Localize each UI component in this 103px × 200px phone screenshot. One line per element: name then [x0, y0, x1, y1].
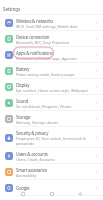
- staticText: Sound: [16, 98, 28, 104]
- staticText: Device connection: [16, 34, 50, 40]
- staticText: Storage: [16, 114, 31, 120]
- button[interactable]: Storage: [0, 111, 103, 127]
- button[interactable]: Security & privacy: [0, 127, 103, 148]
- button[interactable]: Battery: [0, 63, 103, 79]
- staticText: Users, Cloud, Accounts: [16, 157, 55, 162]
- staticText: Settings: [3, 6, 21, 12]
- staticText: Wi-Fi, Dual SIM settings, Mobile data: [16, 24, 78, 29]
- staticText: Smart assistance: [16, 167, 47, 173]
- staticText: Google: [16, 185, 30, 191]
- staticText: Eye comfort, Home screen style, Wallpape…: [16, 88, 89, 93]
- button[interactable]: Apps & notifications: [0, 47, 103, 63]
- staticText: Users & accounts: [16, 151, 48, 157]
- button[interactable]: Google: [0, 180, 103, 196]
- button[interactable]: Smart assistance: [0, 164, 103, 180]
- button[interactable]: Recents: [17, 188, 29, 200]
- button[interactable]: Back: [74, 188, 86, 200]
- staticText: Memory, Storage cleaner: [16, 120, 59, 125]
- button[interactable]: Display: [0, 79, 103, 95]
- staticText: Accessibility: [16, 173, 37, 178]
- staticText: Permissions, Default apps, App twin: [16, 56, 77, 61]
- staticText: Battery: [16, 66, 30, 72]
- button[interactable]: Sound: [0, 95, 103, 111]
- staticText: Power saving mode, Battery usage: [16, 72, 75, 77]
- staticText: Display: [16, 82, 30, 88]
- staticText: Fingerprint ID, Face unlock, Screen lock…: [16, 136, 93, 146]
- staticText: Do not disturb, Ringtone, Vibrate: [16, 104, 72, 109]
- staticText: Security & privacy: [16, 130, 49, 136]
- staticText: Apps & notifications: [16, 50, 53, 56]
- staticText: Bluetooth, NFC, Easy Projection: [16, 40, 69, 45]
- staticText: Wireless & networks: [16, 18, 54, 24]
- button[interactable]: Wireless & networks: [0, 15, 103, 31]
- button[interactable]: Device connection: [0, 31, 103, 47]
- button[interactable]: Home: [46, 188, 58, 200]
- button[interactable]: Users & accounts: [0, 148, 103, 164]
